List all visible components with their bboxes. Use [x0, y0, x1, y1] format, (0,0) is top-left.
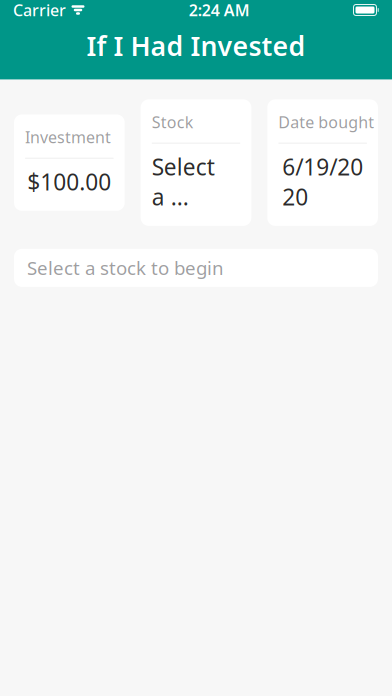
- staticText: 2:24 AM: [189, 0, 250, 21]
- staticText: If I Had Invested: [86, 28, 305, 63]
- button[interactable]: Select a stock to begin: [14, 249, 378, 287]
- staticText: $100.00: [27, 167, 111, 197]
- staticText: 6/19/2020: [282, 152, 363, 212]
- staticText: Stock: [152, 111, 194, 133]
- button[interactable]: Stock: [141, 99, 251, 226]
- staticText: Date bought: [278, 111, 374, 133]
- staticText: Select a ...: [152, 152, 215, 212]
- staticText: Select a stock to begin: [27, 255, 224, 280]
- staticText: Carrier: [13, 0, 66, 21]
- button[interactable]: Date bought: [267, 99, 378, 226]
- button[interactable]: Investment: [14, 114, 125, 211]
- staticText: Investment: [25, 126, 111, 148]
